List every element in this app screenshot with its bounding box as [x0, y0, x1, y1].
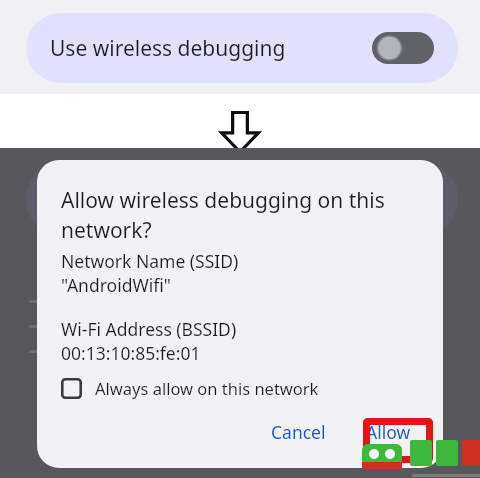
button[interactable]: Always allow on this network — [61, 373, 423, 403]
staticText: Wi-Fi Address (BSSID) — [61, 317, 237, 341]
staticText: Use wireless debugging — [50, 34, 372, 63]
staticText: Allow wireless debugging on this network… — [61, 186, 423, 244]
staticText: "AndroidWifi" — [61, 273, 171, 297]
button[interactable]: Toggle wireless debugging — [372, 32, 434, 64]
staticText: Network Name (SSID) — [61, 249, 239, 273]
staticText: Always allow on this network — [95, 377, 319, 399]
button[interactable]: Use wireless debugging — [26, 13, 458, 83]
staticText: 00:13:10:85:fe:01 — [61, 341, 201, 365]
staticText: Allow — [366, 420, 411, 444]
button[interactable]: Cancel — [259, 412, 338, 452]
button[interactable]: Allow — [354, 412, 423, 452]
staticText: Cancel — [271, 420, 326, 444]
